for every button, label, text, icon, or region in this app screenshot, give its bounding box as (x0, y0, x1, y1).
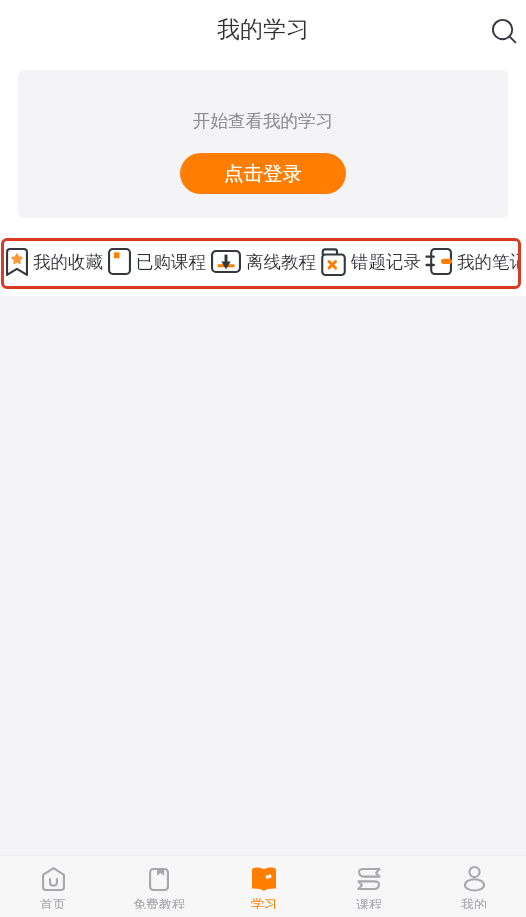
button[interactable]: 点击登录 (180, 153, 346, 194)
staticText: 已购课程 (136, 251, 206, 273)
staticText: 我的 (461, 896, 487, 909)
button[interactable]: 错题记录 (321, 248, 426, 280)
staticText: 开始查看我的学习 (193, 110, 333, 132)
staticText: 点击登录 (224, 161, 302, 186)
staticText: 我的学习 (217, 15, 309, 44)
staticText: 学习 (251, 896, 277, 909)
staticText: 我的收藏 (33, 251, 103, 273)
staticText: 课程 (356, 896, 382, 909)
button[interactable]: 我的收藏 (6, 248, 108, 280)
button[interactable]: 学习 (211, 856, 316, 917)
button[interactable]: 我的笔记 (426, 248, 521, 279)
button[interactable]: 已购课程 (108, 248, 211, 279)
button[interactable]: Search (480, 6, 526, 52)
button[interactable]: 我的 (421, 856, 526, 917)
staticText: 错题记录 (351, 251, 421, 273)
button[interactable]: 课程 (316, 856, 421, 917)
button[interactable]: 离线教程 (211, 250, 321, 277)
staticText: 首页 (40, 896, 66, 909)
button[interactable]: 免费教程 (106, 856, 211, 917)
staticText: 离线教程 (246, 251, 316, 273)
staticText: 免费教程 (133, 896, 185, 909)
staticText: 我的笔记 (457, 251, 521, 273)
button[interactable]: 首页 (0, 856, 106, 917)
